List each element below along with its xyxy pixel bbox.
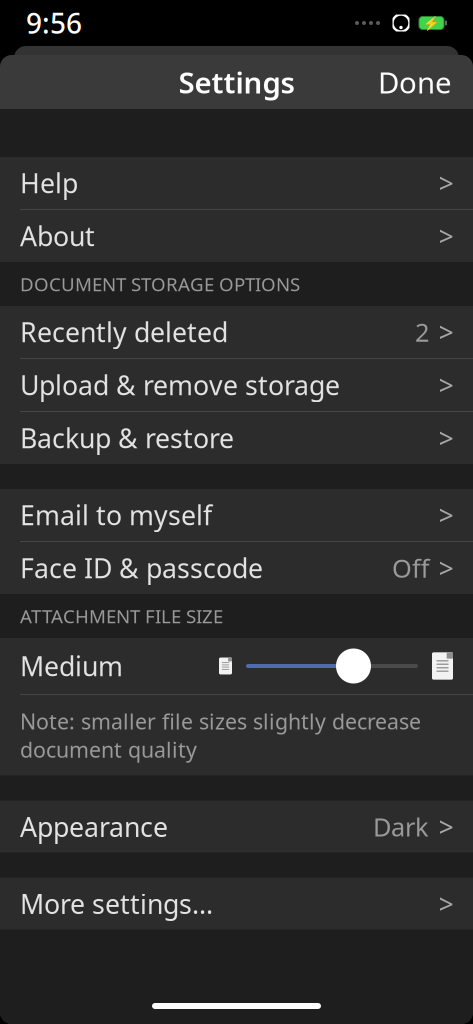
staticText: Help [20,165,78,201]
staticText: > [438,809,453,844]
staticText: > [438,886,453,921]
staticText: More settings... [20,886,213,921]
button[interactable]: More settings... [0,878,473,930]
staticText: > [438,550,453,586]
staticText: Done [378,62,452,101]
staticText: Backup & restore [20,420,234,456]
staticText: 9:56 [26,4,82,42]
staticText: Face ID & passcode [20,550,263,586]
button[interactable]: Appearance [0,801,473,853]
staticText: Upload & remove storage [20,367,340,403]
staticText: 2 [415,315,429,349]
button[interactable]: Upload & remove storage [0,359,473,411]
staticText: Dark [373,810,429,843]
button[interactable]: Backup & restore [0,412,473,464]
staticText: Recently deleted [20,314,228,350]
button[interactable]: Email to myself [0,489,473,541]
staticText: About [20,218,95,254]
button[interactable]: Help [0,157,473,209]
staticText: Email to myself [20,497,212,533]
staticText: > [438,314,453,350]
staticText: > [438,420,453,456]
staticText: Medium [20,648,123,684]
button[interactable]: Face ID & passcode [0,542,473,594]
staticText: DOCUMENT STORAGE OPTIONS [20,272,300,296]
staticText: > [438,218,453,254]
staticText: Off [392,551,429,585]
staticText: > [438,497,453,533]
staticText: Appearance [20,809,168,844]
staticText: ⚡ [423,15,440,31]
staticText: Note: smaller file sizes slightly decrea… [20,707,421,764]
staticText: Settings [178,62,294,101]
button[interactable]: About [0,210,473,262]
staticText: > [438,165,453,201]
button[interactable]: Done [368,54,462,109]
button[interactable]: Recently deleted [0,306,473,358]
staticText: ATTACHMENT FILE SIZE [20,604,223,628]
staticText: > [438,367,453,403]
